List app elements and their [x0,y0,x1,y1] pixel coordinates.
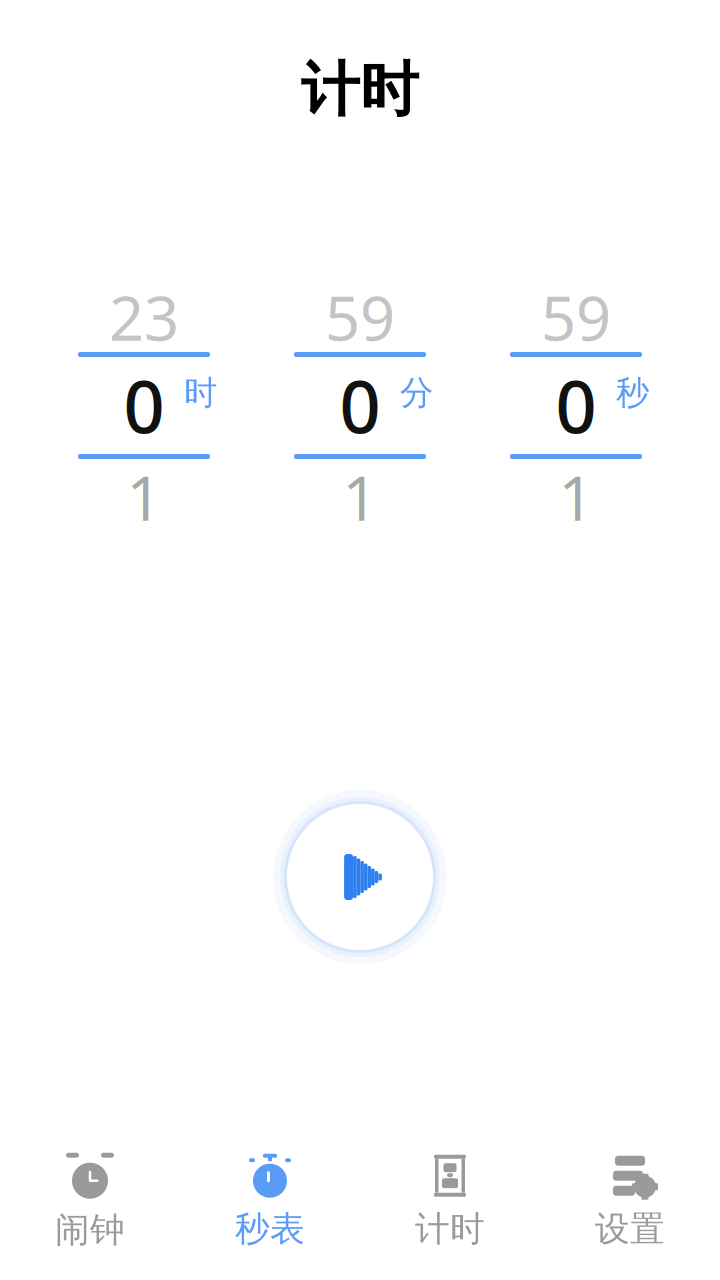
staticText: 时 [184,372,217,413]
button[interactable]: 闹钟 [0,1147,180,1257]
button[interactable]: 开始 [260,777,460,977]
button[interactable]: 23 [54,282,234,535]
staticText: 1 [126,456,161,538]
staticText: 1 [558,456,593,538]
staticText: 59 [541,276,611,358]
staticText: 59 [325,276,395,358]
staticText: 0 [555,358,596,453]
button[interactable]: 计时 [360,1147,540,1257]
button[interactable]: 59 [486,282,666,535]
staticText: 23 [109,276,179,358]
staticText: 计时 [301,54,419,126]
staticText: 0 [339,358,380,453]
button[interactable]: 59 [270,282,450,535]
button[interactable]: 秒表 [180,1147,360,1257]
staticText: 计时 [415,1208,485,1250]
staticText: 秒表 [235,1208,305,1250]
staticText: 设置 [595,1208,665,1250]
staticText: 分 [400,372,433,413]
staticText: 1 [342,456,377,538]
staticText: 秒 [616,372,649,413]
button[interactable]: 设置 [540,1147,720,1257]
staticText: 0 [123,358,164,453]
staticText: 闹钟 [55,1209,125,1251]
